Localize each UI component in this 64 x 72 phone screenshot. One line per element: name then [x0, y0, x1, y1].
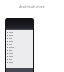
- button[interactable]: [6, 34, 33, 37]
- button[interactable]: [6, 49, 33, 52]
- button[interactable]: [6, 55, 33, 58]
- button[interactable]: [6, 40, 33, 43]
- button[interactable]: [6, 52, 33, 55]
- button[interactable]: [6, 43, 33, 46]
- button[interactable]: [6, 31, 33, 34]
- button[interactable]: [6, 37, 33, 40]
- staticText: And much more: [19, 4, 45, 9]
- button[interactable]: [6, 61, 33, 64]
- button[interactable]: [6, 46, 33, 49]
- button[interactable]: [6, 58, 33, 61]
